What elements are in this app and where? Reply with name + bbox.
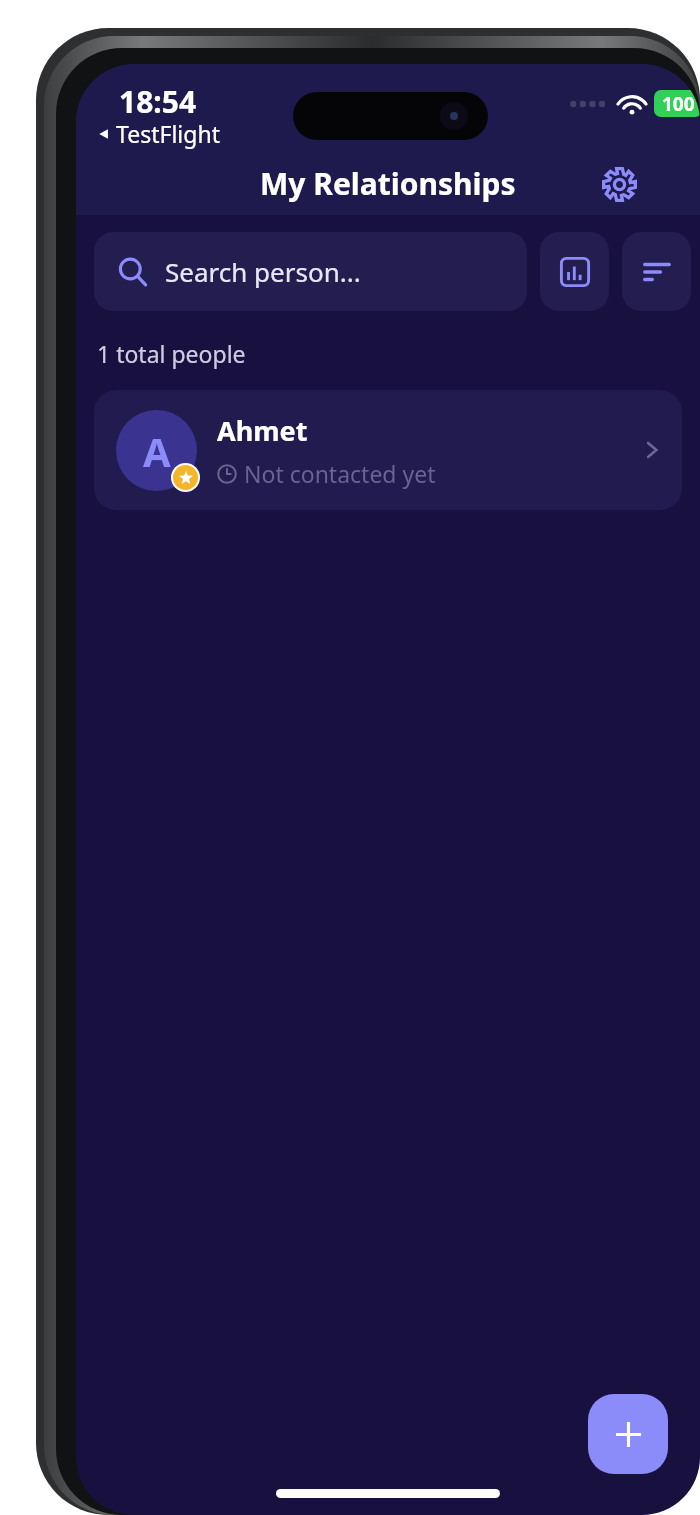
button[interactable]: Sort	[622, 232, 691, 311]
button[interactable]: Search person...	[94, 232, 527, 311]
button[interactable]: TestFlight	[94, 116, 223, 151]
staticText: Not contacted yet	[244, 458, 436, 489]
button[interactable]: Add person	[588, 1394, 668, 1474]
staticText: A	[143, 424, 171, 478]
button[interactable]: A	[94, 390, 682, 510]
staticText: TestFlight	[116, 118, 220, 149]
staticText: 100	[662, 91, 695, 117]
button[interactable]: Settings	[593, 158, 645, 210]
staticText: 18:54	[119, 81, 197, 122]
staticText: 1 total people	[97, 338, 246, 369]
staticText: Search person...	[165, 254, 361, 289]
button[interactable]: Statistics	[540, 232, 609, 311]
staticText: My Relationships	[260, 163, 516, 204]
staticText: Ahmet	[217, 412, 308, 449]
